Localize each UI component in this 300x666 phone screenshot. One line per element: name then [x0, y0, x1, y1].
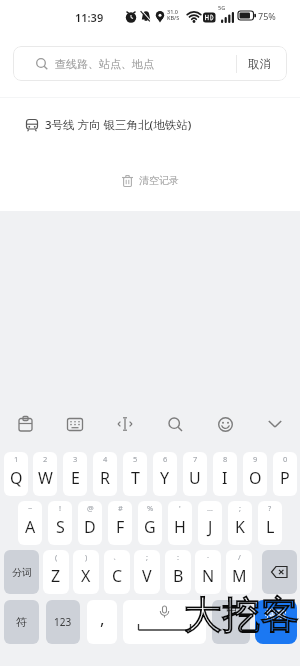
staticText: U: [189, 467, 201, 489]
button[interactable]: :: [165, 550, 191, 594]
staticText: Y: [160, 467, 170, 489]
button[interactable]: 搜索: [255, 600, 297, 644]
staticText: 123: [54, 615, 72, 629]
staticText: H: [174, 516, 186, 538]
staticText: B: [173, 565, 184, 587]
staticText: 中: [226, 603, 237, 617]
button[interactable]: 2: [33, 452, 57, 496]
button[interactable]: [159, 410, 191, 438]
staticText: W: [38, 467, 53, 489]
button[interactable]: @: [78, 501, 102, 545]
staticText: 31.0: [167, 8, 178, 15]
staticText: ): [85, 552, 88, 562]
staticText: ?: [268, 503, 272, 513]
button[interactable]: ): [73, 550, 99, 594]
staticText: X: [81, 565, 91, 587]
staticText: M: [232, 565, 247, 587]
button[interactable]: #: [108, 501, 132, 545]
button[interactable]: 7: [183, 452, 207, 496]
staticText: ;: [146, 552, 149, 562]
staticText: 搜索: [265, 607, 287, 621]
button[interactable]: 8: [213, 452, 237, 496]
button[interactable]: %: [138, 501, 162, 545]
staticText: /: [238, 552, 241, 562]
staticText: 5G: [218, 4, 226, 11]
staticText: 符: [16, 615, 27, 629]
staticText: L: [266, 516, 275, 538]
staticText: E: [71, 467, 80, 489]
staticText: ,: [100, 607, 105, 630]
staticText: !: [59, 503, 62, 513]
staticText: F: [116, 516, 125, 538]
staticText: Z: [51, 565, 61, 587]
button[interactable]: 、: [104, 550, 130, 594]
button[interactable]: [262, 550, 297, 594]
staticText: %: [147, 503, 154, 513]
button[interactable]: ·: [195, 550, 221, 594]
button[interactable]: ': [168, 501, 192, 545]
staticText: D: [84, 516, 96, 538]
staticText: 3号线 方向 银三角北(地铁站): [45, 117, 192, 133]
staticText: J: [208, 516, 213, 538]
button[interactable]: 3号线 方向 银三角北(地铁站): [0, 108, 300, 142]
staticText: G: [144, 516, 156, 538]
staticText: 5: [133, 454, 138, 464]
button[interactable]: 1: [4, 452, 28, 496]
button[interactable]: 中: [212, 600, 250, 644]
staticText: 6: [163, 454, 168, 464]
staticText: ·: [207, 552, 210, 562]
staticText: ~: [28, 503, 33, 513]
staticText: 查线路、站点、地点: [55, 57, 154, 71]
button[interactable]: ,: [87, 600, 117, 644]
button[interactable]: 3: [63, 452, 87, 496]
button[interactable]: 123: [46, 600, 80, 644]
staticText: R: [100, 467, 110, 489]
staticText: C: [112, 565, 123, 587]
button[interactable]: …: [198, 501, 222, 545]
staticText: P: [280, 467, 290, 489]
staticText: 、: [113, 552, 121, 561]
button[interactable]: ;: [134, 550, 160, 594]
staticText: @: [87, 503, 94, 513]
button[interactable]: !: [48, 501, 72, 545]
staticText: 8: [223, 454, 228, 464]
button[interactable]: 取消: [248, 57, 271, 71]
staticText: ;: [239, 503, 242, 513]
staticText: ': [179, 503, 181, 513]
button[interactable]: [9, 410, 41, 438]
button[interactable]: [259, 410, 291, 438]
staticText: N: [202, 565, 215, 587]
button[interactable]: (: [43, 550, 69, 594]
staticText: A: [25, 516, 36, 538]
staticText: S: [56, 516, 65, 538]
staticText: 11:39: [75, 10, 104, 25]
button[interactable]: 清空记录: [0, 169, 300, 191]
button[interactable]: ~: [18, 501, 42, 545]
button[interactable]: 6: [153, 452, 177, 496]
button[interactable]: /: [226, 550, 252, 594]
button[interactable]: 查线路、站点、地点: [13, 46, 287, 81]
staticText: 0: [283, 454, 288, 464]
button[interactable]: [109, 410, 141, 438]
button[interactable]: ?: [258, 501, 282, 545]
button[interactable]: 0: [273, 452, 297, 496]
staticText: 7: [193, 454, 198, 464]
staticText: 2: [43, 454, 48, 464]
staticText: 清空记录: [139, 174, 179, 187]
staticText: V: [142, 565, 152, 587]
button[interactable]: ;: [228, 501, 252, 545]
button[interactable]: [123, 600, 206, 644]
staticText: #: [118, 503, 123, 513]
button[interactable]: [59, 410, 91, 438]
staticText: (: [55, 552, 58, 562]
staticText: 大挖客: [184, 591, 300, 639]
button[interactable]: 4: [93, 452, 117, 496]
staticText: 4: [103, 454, 108, 464]
button[interactable]: [209, 410, 241, 438]
button[interactable]: 9: [243, 452, 267, 496]
button[interactable]: 符: [4, 600, 39, 644]
staticText: :: [177, 552, 180, 562]
button[interactable]: 分词: [4, 550, 39, 594]
staticText: I: [222, 467, 228, 489]
button[interactable]: 5: [123, 452, 147, 496]
